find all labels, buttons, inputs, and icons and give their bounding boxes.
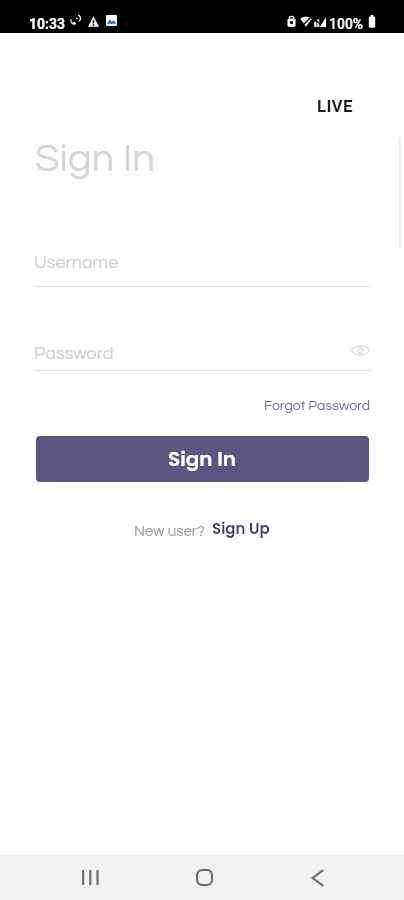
staticText: Sign In bbox=[168, 445, 237, 473]
button[interactable]: Recent apps bbox=[69, 855, 111, 900]
staticText: 100% bbox=[329, 16, 364, 32]
button[interactable]: Show password bbox=[347, 339, 373, 361]
button[interactable]: Sign Up bbox=[212, 518, 270, 539]
button[interactable]: Home bbox=[183, 855, 225, 900]
staticText: New user? bbox=[134, 524, 212, 539]
button[interactable]: Sign In bbox=[36, 436, 369, 482]
button[interactable]: Forgot Password bbox=[264, 399, 371, 413]
button[interactable]: Back bbox=[296, 855, 338, 900]
staticText: Password bbox=[34, 344, 345, 363]
staticText: Sign In bbox=[35, 138, 155, 179]
staticText: 10:33 bbox=[29, 16, 66, 32]
button[interactable]: LIVE bbox=[317, 96, 353, 116]
staticText: Username bbox=[34, 253, 119, 272]
